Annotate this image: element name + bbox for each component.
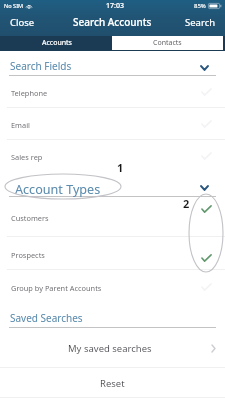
staticText: Search Fields <box>10 59 72 73</box>
staticText: Reset <box>100 377 125 390</box>
other: Collapse section <box>200 65 209 71</box>
staticText: Account Types <box>15 181 101 198</box>
staticText: Email <box>11 120 30 130</box>
staticText: Close <box>10 16 35 29</box>
staticText: Search <box>185 16 216 29</box>
button[interactable]: Customers <box>0 197 225 237</box>
button[interactable]: Telephone <box>0 76 225 108</box>
other: Open saved searches <box>211 344 216 353</box>
staticText: 1 <box>117 160 124 175</box>
staticText: Telephone <box>11 88 48 98</box>
staticText: Search Accounts <box>73 15 152 29</box>
button[interactable]: Email <box>0 108 225 140</box>
button[interactable]: Account Types <box>15 181 101 198</box>
staticText: 85% <box>194 2 206 10</box>
staticText: Accounts <box>42 38 72 48</box>
button[interactable]: Prospects <box>0 237 225 270</box>
button[interactable]: Close <box>10 16 35 29</box>
button[interactable]: My saved searches <box>0 328 225 368</box>
staticText: 2 <box>183 196 190 211</box>
button[interactable]: Search <box>185 16 216 29</box>
staticText: Sales rep <box>11 152 43 162</box>
staticText: Contacts <box>153 38 182 48</box>
other: Collapse section <box>200 185 209 191</box>
button[interactable]: Group by Parent Accounts <box>0 270 225 303</box>
staticText: Group by Parent Accounts <box>11 283 102 293</box>
button[interactable]: Contacts <box>112 36 223 50</box>
staticText: Customers <box>11 213 49 223</box>
button[interactable]: Collapse section <box>200 65 209 71</box>
button[interactable]: Collapse section <box>200 185 209 191</box>
staticText: Saved Searches <box>10 311 83 325</box>
staticText: No SIM <box>4 2 24 10</box>
button[interactable]: Sales rep <box>0 140 225 172</box>
staticText: Prospects <box>11 250 45 260</box>
staticText: 17:03 <box>106 1 124 11</box>
staticText: My saved searches <box>68 342 152 355</box>
button[interactable]: Accounts <box>1 36 112 50</box>
button[interactable]: Reset <box>0 368 225 398</box>
